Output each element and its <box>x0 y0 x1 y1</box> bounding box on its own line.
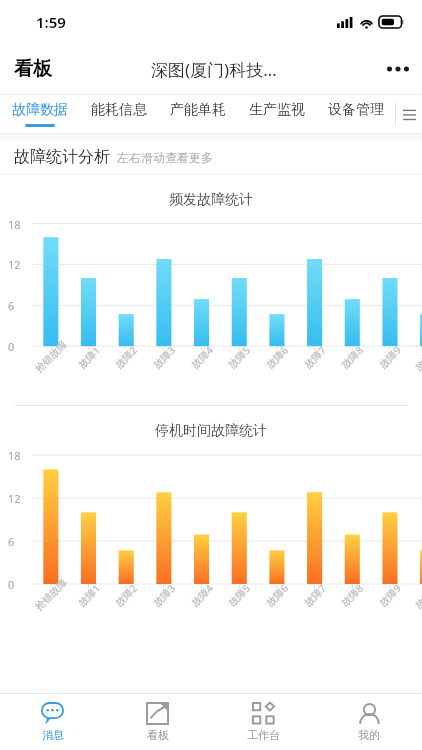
staticText: 看板 <box>147 728 169 742</box>
staticText: 消息 <box>42 728 64 742</box>
button[interactable]: 工作台 <box>210 694 316 750</box>
staticText: 12 <box>8 257 21 272</box>
staticText: 6 <box>8 534 15 549</box>
button[interactable]: 看板 <box>14 57 52 81</box>
staticText: 18 <box>8 217 21 232</box>
button[interactable]: 生产监视 <box>237 95 316 133</box>
staticText: 故障4 <box>188 581 216 609</box>
staticText: 故障3 <box>150 581 178 609</box>
button[interactable]: 设备管理 <box>316 95 395 133</box>
staticText: 0 <box>8 577 15 592</box>
staticText: 故障10 <box>412 341 422 373</box>
staticText: 停机时间故障统计 <box>155 422 267 440</box>
staticText: 故障1 <box>75 581 103 609</box>
staticText: 18 <box>8 448 21 463</box>
button[interactable]: 产能单耗 <box>158 95 237 133</box>
staticText: 12 <box>8 491 21 506</box>
button[interactable]: 消息 <box>0 694 105 750</box>
staticText: 故障2 <box>112 581 140 609</box>
staticText: 故障6 <box>263 343 291 371</box>
staticText: 深图(厦门)科技… <box>151 58 277 81</box>
button[interactable]: 能耗信息 <box>79 95 158 133</box>
staticText: 我的 <box>358 728 380 742</box>
staticText: 故障6 <box>263 581 291 609</box>
button[interactable]: 我的 <box>316 694 422 750</box>
staticText: 故障1 <box>75 343 103 371</box>
staticText: 故障7 <box>301 581 329 609</box>
staticText: 左右滑动查看更多 <box>117 150 213 165</box>
staticText: 抢错故障 <box>32 338 70 375</box>
staticText: 故障5 <box>225 343 253 371</box>
staticText: 故障统计分析 <box>14 147 110 167</box>
staticText: 故障3 <box>150 343 178 371</box>
staticText: 故障8 <box>338 343 366 371</box>
staticText: 设备管理 <box>328 101 384 119</box>
button[interactable]: Show all tabs <box>396 95 422 133</box>
staticText: 0 <box>8 339 15 354</box>
staticText: 频发故障统计 <box>169 191 253 209</box>
staticText: 故障4 <box>188 343 216 371</box>
staticText: 6 <box>8 298 15 313</box>
staticText: 能耗信息 <box>91 101 147 119</box>
staticText: 故障2 <box>112 343 140 371</box>
staticText: 故障数据 <box>12 101 68 119</box>
staticText: 产能单耗 <box>170 101 226 119</box>
staticText: 故障9 <box>376 581 404 609</box>
button[interactable]: More options <box>374 45 422 93</box>
staticText: 抢错故障 <box>32 576 70 613</box>
staticText: 故障8 <box>338 581 366 609</box>
button[interactable]: 故障数据 <box>0 95 79 133</box>
staticText: 1:59 <box>36 12 66 32</box>
button[interactable]: 看板 <box>105 694 210 750</box>
staticText: 故障5 <box>225 581 253 609</box>
staticText: 工作台 <box>247 728 280 742</box>
staticText: 故障10 <box>412 579 422 611</box>
staticText: 故障9 <box>376 343 404 371</box>
staticText: 故障7 <box>301 343 329 371</box>
staticText: 生产监视 <box>249 101 305 119</box>
